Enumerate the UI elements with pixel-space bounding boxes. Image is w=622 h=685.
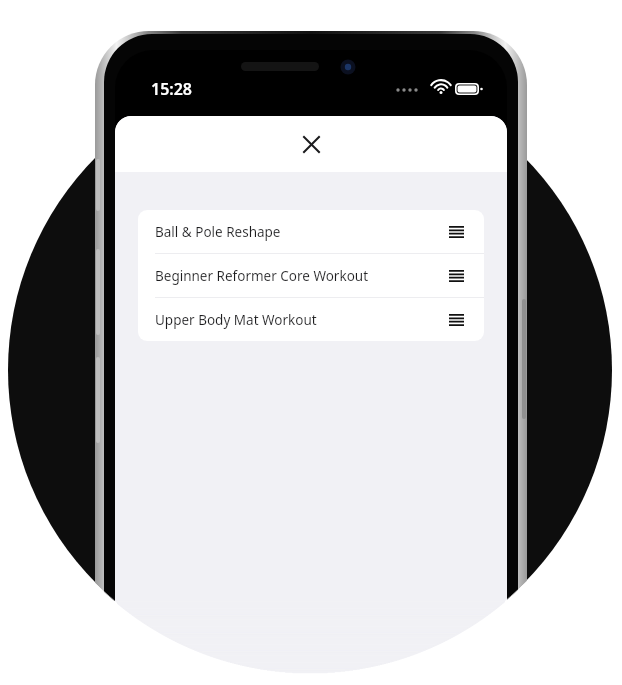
button[interactable]: Upper Body Mat Workout	[138, 298, 484, 341]
button[interactable]: Close	[294, 127, 328, 161]
button[interactable]: Reorder Ball & Pole Reshape	[443, 219, 469, 245]
staticText: Beginner Reformer Core Workout	[155, 267, 443, 285]
staticText: 15:28	[151, 78, 193, 100]
button[interactable]: Ball & Pole Reshape	[138, 210, 484, 253]
button[interactable]: Reorder Beginner Reformer Core Workout	[443, 263, 469, 289]
staticText: Ball & Pole Reshape	[155, 223, 443, 241]
button[interactable]: Reorder Upper Body Mat Workout	[443, 307, 469, 333]
button[interactable]: Beginner Reformer Core Workout	[138, 254, 484, 297]
staticText: Upper Body Mat Workout	[155, 311, 443, 329]
